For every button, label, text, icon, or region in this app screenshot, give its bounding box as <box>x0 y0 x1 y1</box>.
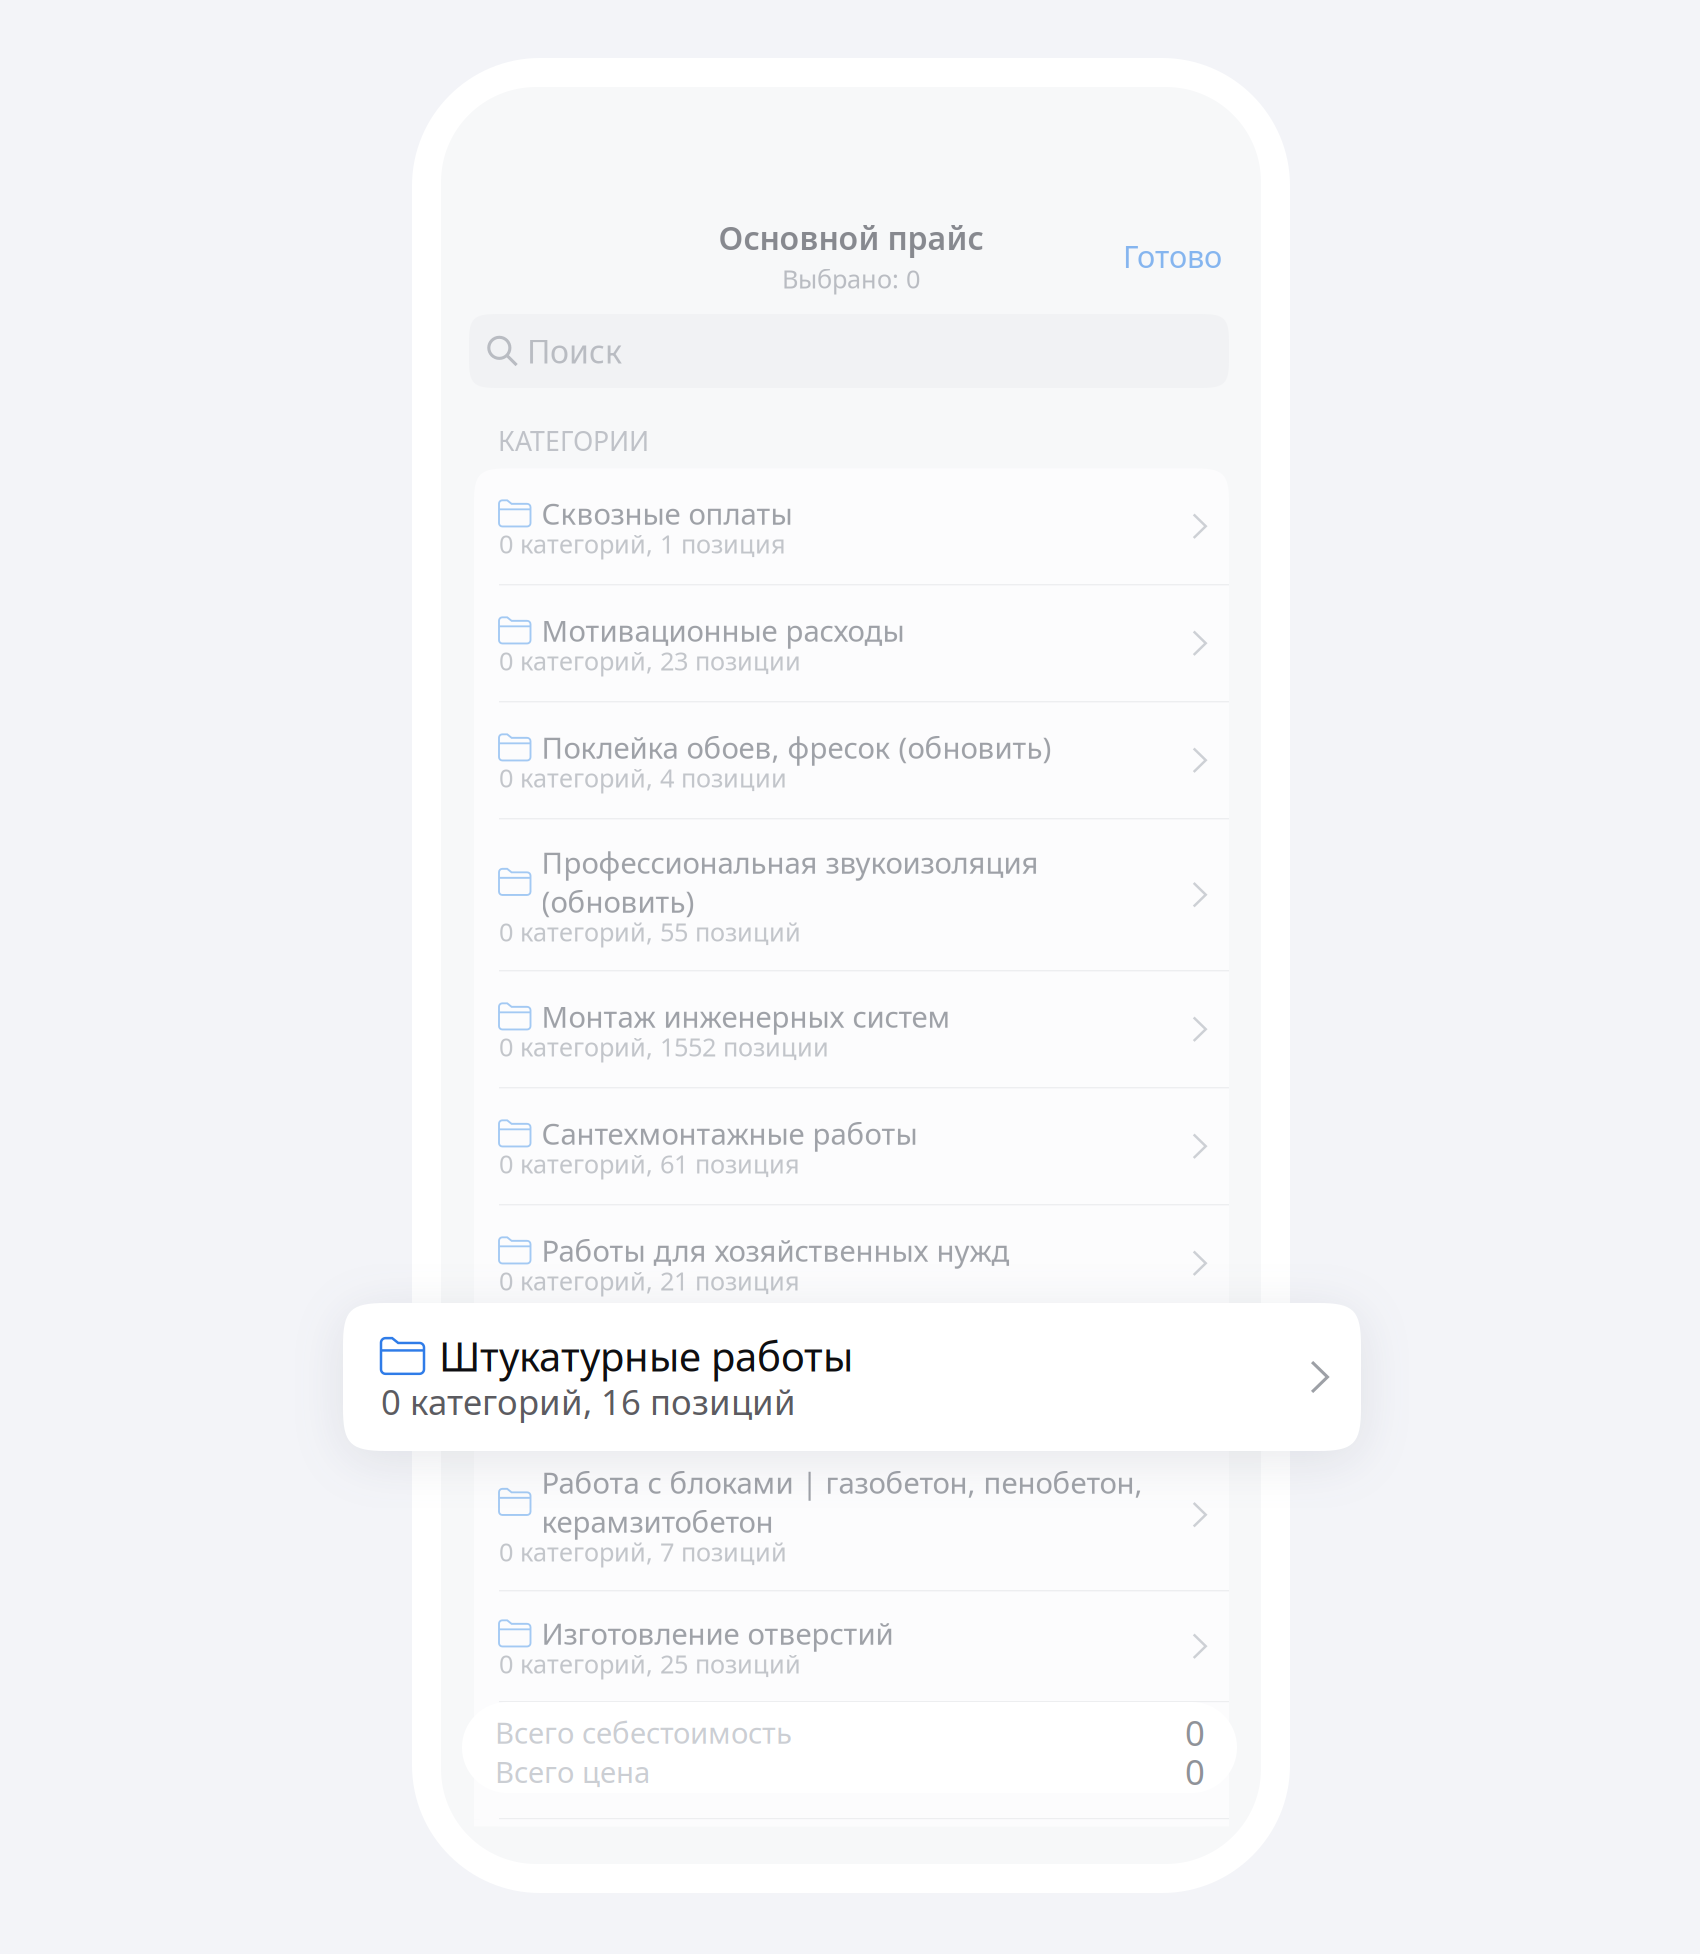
staticText: 0 <box>1185 1748 1205 1794</box>
staticText: Поклейка обоев, фресок (обновить) <box>541 728 1051 767</box>
staticText: Мотивационные расходы <box>541 611 904 650</box>
staticText: Сквозные оплаты <box>541 494 792 533</box>
staticText: 0 категорий, 16 позиций <box>499 1381 801 1414</box>
staticText: 0 категорий, 21 позиция <box>499 1264 800 1297</box>
staticText: Выбрано: 0 <box>782 262 920 295</box>
staticText: Сантехмонтажные работы <box>541 1114 917 1153</box>
button[interactable]: Готово <box>1123 236 1222 276</box>
staticText: 0 категорий, 23 позиции <box>499 644 801 677</box>
staticText: Монтаж инженерных систем <box>541 997 950 1036</box>
button[interactable]: Работа с блоками | газобетон, пенобетон,… <box>474 1439 1229 1590</box>
staticText: Всего цена <box>495 1752 650 1791</box>
staticText: Профессиональная звукоизоляция (обновить… <box>541 843 1038 921</box>
staticText: 0 категорий, 25 позиций <box>499 1647 801 1680</box>
staticText: КАТЕГОРИИ <box>498 423 649 458</box>
staticText: 0 категорий, 61 позиция <box>499 1147 800 1180</box>
staticText: Готово <box>1123 236 1222 276</box>
staticText: Основной прайс <box>718 216 983 259</box>
staticText: 0 категорий, 55 позиций <box>499 915 801 948</box>
staticText: 0 <box>1185 1709 1205 1755</box>
button[interactable]: Поиск <box>469 314 1229 388</box>
staticText: Изготовление отверстий <box>541 1614 893 1653</box>
staticText: Работы для хозяйственных нужд <box>541 1231 1009 1270</box>
staticText: 0 категорий, 1552 позиции <box>499 1030 829 1063</box>
button[interactable]: Монтаж инженерных систем <box>474 971 1229 1087</box>
button[interactable]: Профессиональная звукоизоляция (обновить… <box>474 819 1229 970</box>
button[interactable]: Штукатурные работы <box>474 1322 1229 1438</box>
button[interactable]: Сантехмонтажные работы <box>474 1088 1229 1204</box>
staticText: 0 категорий, 7 позиций <box>499 1535 787 1568</box>
staticText: Штукатурные работы <box>439 1329 853 1382</box>
button[interactable]: Работы для хозяйственных нужд <box>474 1205 1229 1321</box>
staticText: 0 категорий, 4 позиции <box>499 761 787 794</box>
staticText: 0 категорий, 16 позиций <box>381 1378 796 1424</box>
staticText: Штукатурные работы <box>541 1348 847 1387</box>
staticText: Всего себестоимость <box>495 1713 792 1752</box>
button[interactable]: Поклейка обоев, фресок (обновить) <box>474 702 1229 818</box>
staticText: Поиск <box>527 330 622 372</box>
button[interactable]: Мотивационные расходы <box>474 585 1229 701</box>
staticText: Работа с блоками | газобетон, пенобетон,… <box>541 1463 1142 1541</box>
staticText: 0 категорий, 1 позиция <box>499 527 786 560</box>
button[interactable]: Штукатурные работы <box>343 1303 1361 1451</box>
button[interactable]: Сквозные оплаты <box>474 468 1229 584</box>
button[interactable]: Изготовление отверстий <box>474 1591 1229 1701</box>
